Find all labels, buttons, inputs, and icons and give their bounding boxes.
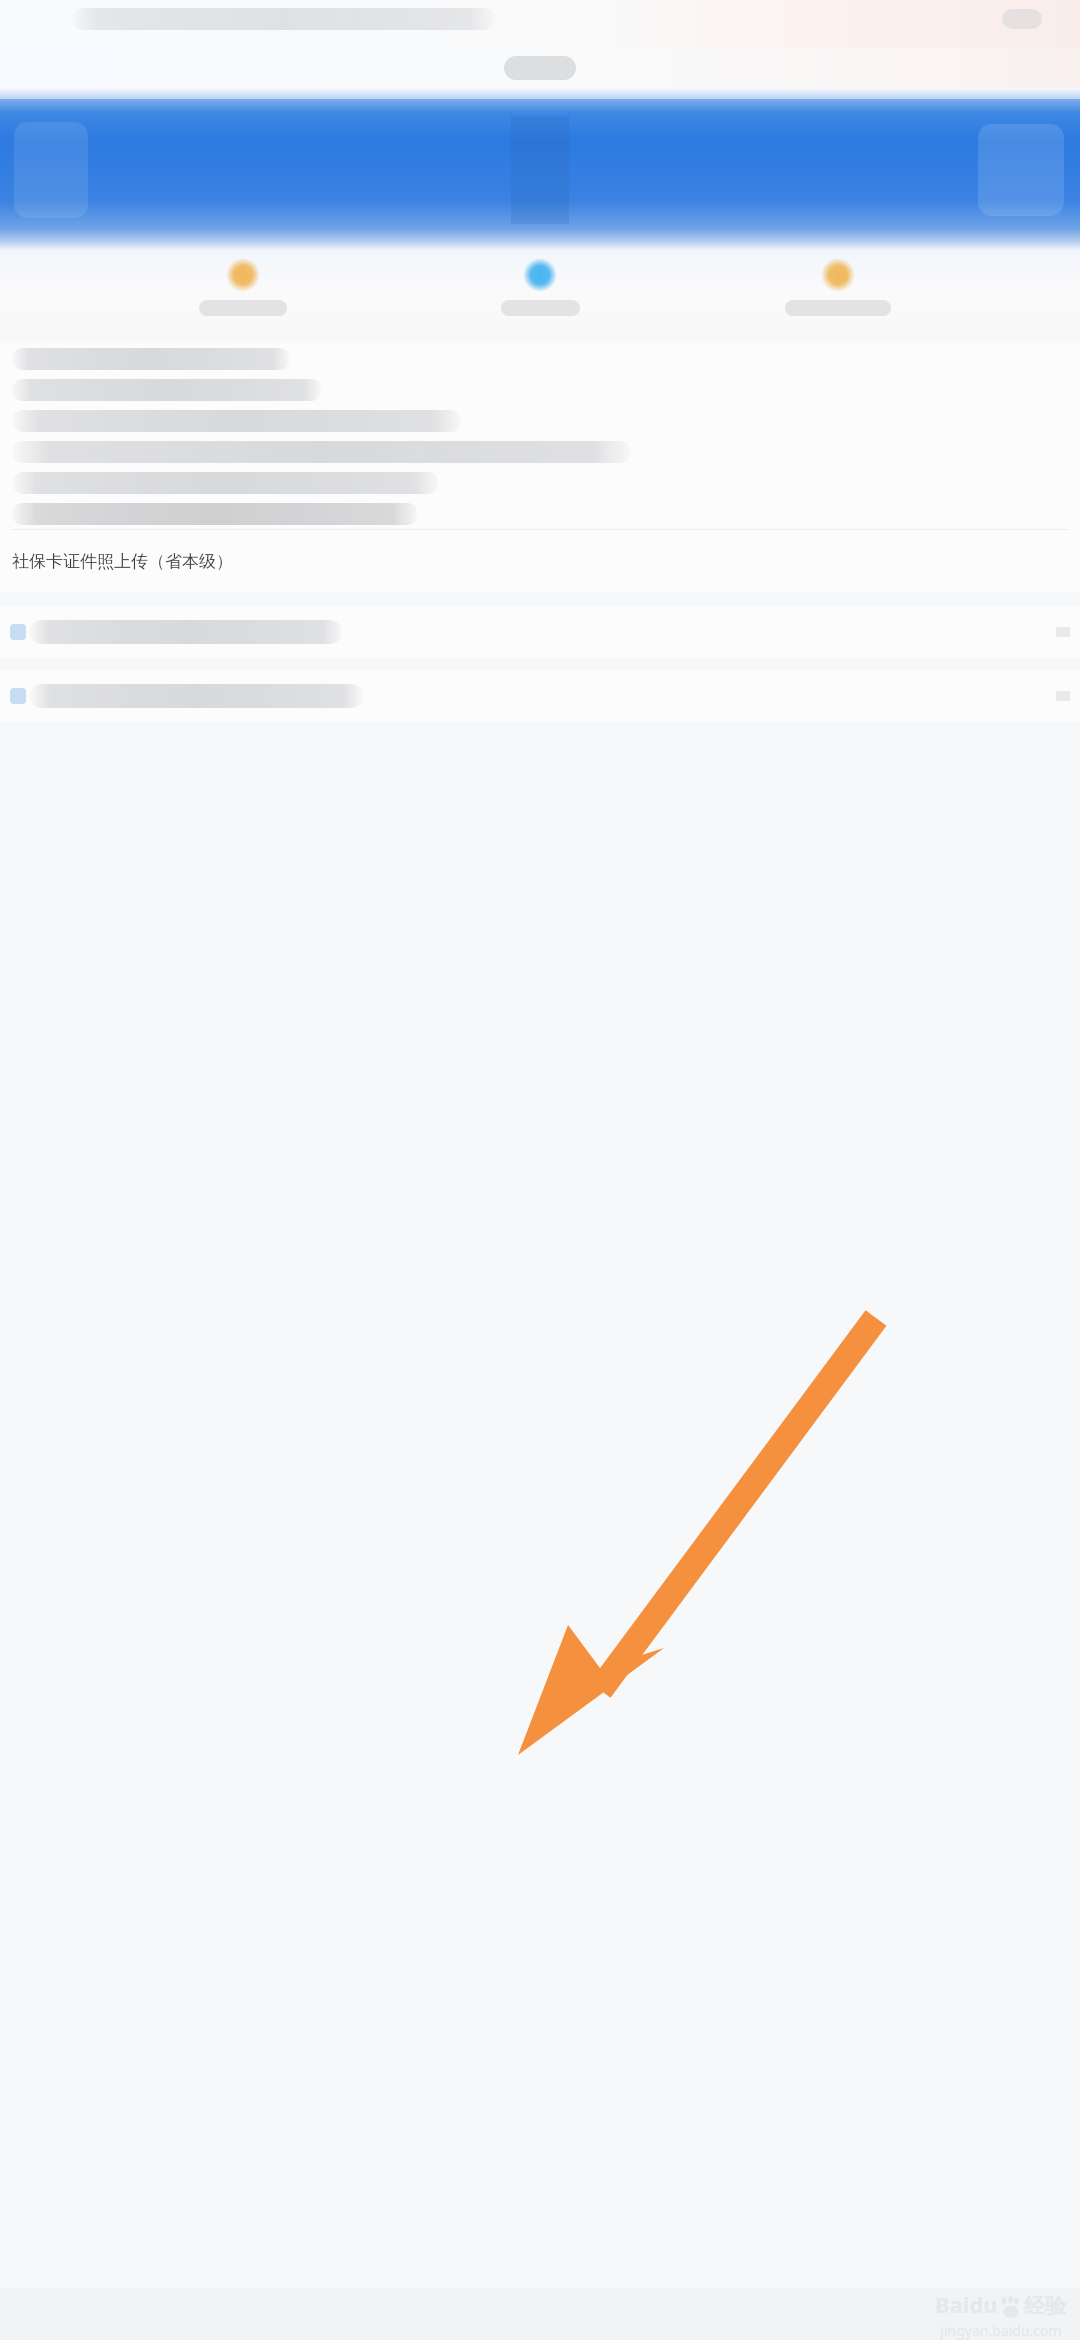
button[interactable]: Service item: [0, 343, 1080, 374]
button[interactable]: Service item: [0, 467, 1080, 498]
button[interactable]: Service item: [0, 498, 1080, 529]
button[interactable]: Quick action: [783, 250, 893, 333]
button[interactable]: Service item: [0, 405, 1080, 436]
staticText: 社保卡证件照上传（省本级）: [12, 551, 233, 572]
button[interactable]: Service item: [0, 374, 1080, 405]
button[interactable]: 社保卡证件照上传（省本级）: [0, 530, 1080, 592]
staticText: Baidu: [935, 2289, 998, 2319]
button[interactable]: List item: [0, 670, 1080, 722]
button[interactable]: List item: [0, 606, 1080, 658]
staticText: 经验: [1024, 2293, 1066, 2319]
button[interactable]: Quick action: [485, 250, 595, 333]
button[interactable]: Quick action: [188, 250, 298, 333]
staticText: jingyan.baidu.com: [940, 2321, 1062, 2340]
button[interactable]: Service item: [0, 436, 1080, 467]
